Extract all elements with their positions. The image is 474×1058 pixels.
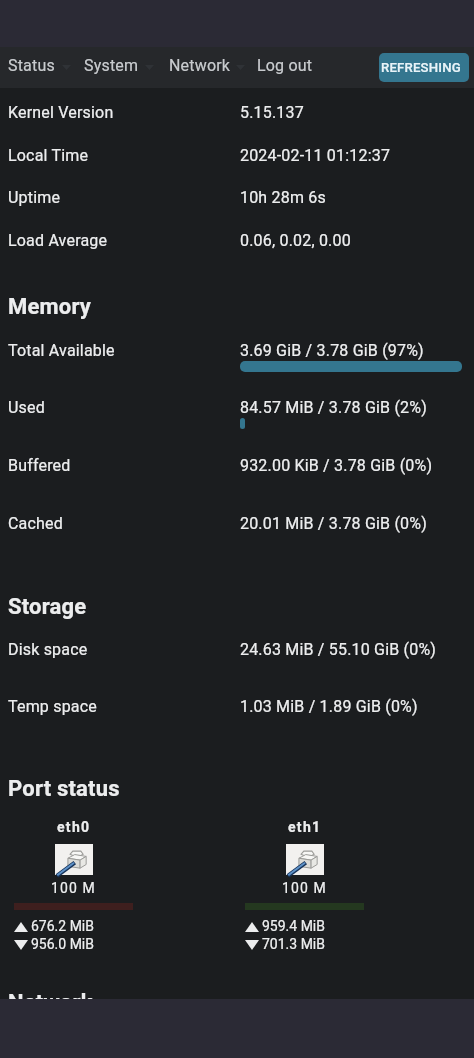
- staticText: Network: [8, 990, 93, 1016]
- staticText: 100 M: [51, 880, 96, 896]
- staticText: 10h 28m 6s: [240, 188, 326, 207]
- button[interactable]: Status: [0, 47, 47, 66]
- staticText: Buffered: [8, 456, 71, 475]
- staticText: 959.4 MiB: [262, 918, 325, 934]
- staticText: eth1: [288, 819, 322, 835]
- staticText: eth0: [57, 819, 91, 835]
- staticText: Storage: [8, 594, 87, 620]
- staticText: 100 M: [282, 880, 327, 896]
- staticText: Temp space: [8, 697, 97, 716]
- staticText: 1.03 MiB / 1.89 GiB (0%): [240, 697, 418, 716]
- staticText: Port status: [8, 776, 120, 802]
- staticText: Cached: [8, 514, 63, 533]
- staticText: 2024-02-11 01:12:37: [240, 146, 391, 165]
- staticText: REFRESHING: [381, 60, 461, 75]
- staticText: 3.69 GiB / 3.78 GiB (97%): [240, 341, 424, 360]
- staticText: Load Average: [8, 231, 108, 250]
- staticText: 84.57 MiB / 3.78 GiB (2%): [240, 398, 427, 417]
- staticText: Disk space: [8, 640, 88, 659]
- staticText: 956.0 MiB: [31, 936, 94, 952]
- staticText: 701.3 MiB: [262, 936, 325, 952]
- staticText: 24.63 MiB / 55.10 GiB (0%): [240, 640, 437, 659]
- button[interactable]: REFRESHING: [379, 53, 469, 82]
- staticText: 5.15.137: [240, 103, 304, 122]
- staticText: Uptime: [8, 188, 61, 207]
- button[interactable]: Network: [0, 47, 62, 66]
- staticText: 0.06, 0.02, 0.00: [240, 231, 351, 250]
- staticText: Memory: [8, 294, 92, 320]
- staticText: 676.2 MiB: [31, 918, 94, 934]
- staticText: 932.00 KiB / 3.78 GiB (0%): [240, 456, 433, 475]
- button[interactable]: Log out: [0, 47, 56, 66]
- staticText: Used: [8, 398, 45, 417]
- button[interactable]: System: [0, 47, 55, 66]
- staticText: Local Time: [8, 146, 89, 165]
- staticText: Kernel Version: [8, 103, 114, 122]
- staticText: 20.01 MiB / 3.78 GiB (0%): [240, 514, 427, 533]
- staticText: Total Available: [8, 341, 115, 360]
